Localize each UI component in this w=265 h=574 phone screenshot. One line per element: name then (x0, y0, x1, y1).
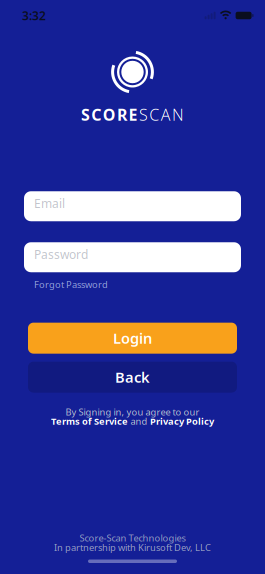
staticText: S (139, 104, 148, 125)
staticText: S (81, 104, 90, 125)
button[interactable]: Forgot Password (34, 278, 108, 291)
button[interactable]: Back (28, 362, 237, 393)
staticText: By Signing in, you agree to our (65, 406, 199, 418)
staticText: 3:32 (22, 7, 46, 23)
staticText: and (130, 415, 147, 427)
staticText: Password (34, 246, 88, 262)
staticText: Privacy Policy (150, 415, 214, 427)
staticText: C (149, 104, 159, 125)
staticText: Email (34, 195, 65, 211)
staticText: Forgot Password (34, 278, 108, 291)
button[interactable]: Terms of Service (51, 415, 214, 427)
staticText: A (161, 104, 171, 125)
staticText: C (91, 104, 101, 125)
staticText: Terms of Service (51, 415, 128, 427)
staticText: E (128, 104, 137, 125)
button[interactable]: Login (28, 323, 237, 354)
staticText: Back (115, 367, 150, 387)
staticText: In partnership with Kirusoft Dev, LLC (54, 541, 211, 553)
staticText: R (117, 104, 127, 125)
staticText: O (103, 104, 116, 125)
staticText: Login (113, 328, 152, 348)
staticText: Score-Scan Technologies (79, 532, 185, 544)
staticText: N (172, 104, 184, 125)
